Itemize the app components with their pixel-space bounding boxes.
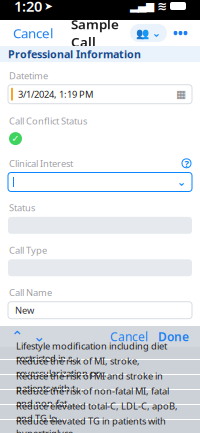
button[interactable]: Reduce elevated TG in patients with hype… (0, 420, 200, 433)
staticText: Reduce the risk of non-fatal MI, fatal a… (16, 385, 169, 409)
button[interactable]: Next field (28, 325, 50, 348)
button[interactable]: Cancel (6, 19, 60, 47)
button[interactable]: Reduce elevated total-C, LDL-C, apoB, an… (0, 405, 200, 419)
button[interactable]: Done (153, 325, 194, 347)
staticText: Sample Call (71, 15, 119, 51)
staticText: Reduce the risk of MI, stroke, revascula… (16, 355, 140, 379)
staticText: Cancel (13, 24, 53, 42)
staticText: ✓ (11, 133, 19, 144)
staticText: ➤ (44, 0, 53, 12)
staticText: Reduce the risk of MI and stroke in pati… (16, 370, 163, 394)
staticText: ? (184, 157, 188, 169)
staticText: ▂▄▆ (130, 0, 154, 12)
staticText: 3/1/2024, 1:19 PM (18, 88, 93, 100)
staticText: Clinical Interest (9, 157, 73, 169)
staticText: Cancel (110, 328, 148, 344)
staticText: Status (9, 201, 35, 214)
button[interactable]: Reduce the risk of non-fatal MI, fatal a… (0, 390, 200, 404)
staticText: ••• (173, 24, 188, 42)
staticText: Professional Information (8, 47, 141, 61)
button[interactable]: Previous field (6, 325, 28, 348)
staticText: ⌄ (152, 27, 161, 39)
button[interactable]: Reduce the risk of MI and stroke in pati… (0, 375, 200, 389)
staticText: Reduce elevated total-C, LDL-C, apoB, an… (16, 400, 178, 424)
staticText: Lifestyle modification including diet re… (16, 340, 167, 364)
staticText: ⌃ (11, 328, 23, 345)
staticText: Call Conflict Status (9, 115, 87, 127)
staticText: 👥 (136, 27, 149, 39)
staticText: ≋ (157, 0, 167, 13)
staticText: Reduce elevated TG in patients with hype… (16, 415, 166, 433)
staticText: ▦ (176, 88, 186, 100)
button[interactable]: Cancel (105, 325, 153, 347)
staticText: 1:20 (14, 0, 42, 16)
staticText: ⌄ (177, 176, 186, 188)
button[interactable]: Help (182, 159, 191, 168)
staticText: New (15, 304, 34, 316)
button[interactable]: Lifestyle modification including diet re… (0, 345, 200, 359)
button[interactable]: Attendees (130, 24, 167, 42)
button[interactable]: Reduce the risk of MI, stroke, revascula… (0, 360, 200, 374)
staticText: Call Name (9, 286, 52, 299)
button[interactable]: More options (167, 20, 194, 46)
staticText: ⌄ (33, 328, 45, 345)
staticText: Datetime (9, 69, 48, 82)
staticText: Done (158, 328, 189, 344)
staticText: Call Type (9, 244, 47, 256)
